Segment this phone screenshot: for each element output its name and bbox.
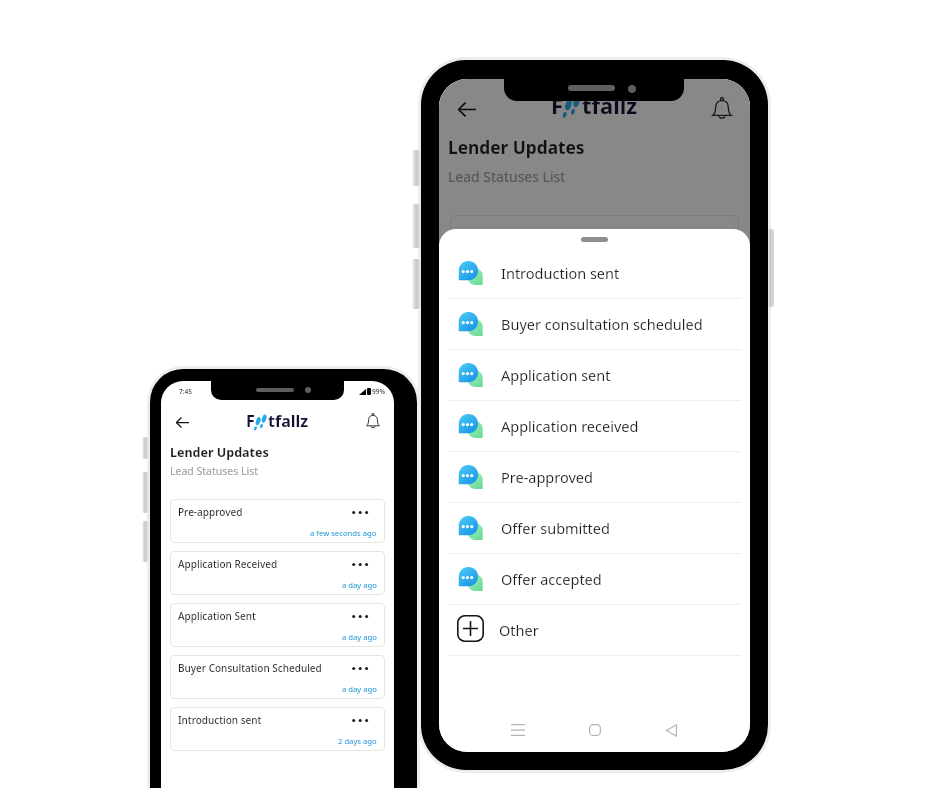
- staticText: Other: [499, 620, 539, 640]
- staticText: Introduction sent: [501, 263, 620, 283]
- button[interactable]: Back: [172, 412, 192, 432]
- staticText: a day ago: [342, 580, 377, 590]
- button[interactable]: Back: [454, 96, 480, 122]
- staticText: Lead Statuses List: [448, 167, 566, 186]
- button[interactable]: Introduction sent: [170, 707, 385, 751]
- button[interactable]: Application sent: [439, 350, 750, 400]
- button[interactable]: Introduction sent: [439, 248, 750, 298]
- staticText: F: [246, 410, 255, 432]
- button[interactable]: Application received: [439, 401, 750, 451]
- button[interactable]: Notifications: [709, 96, 735, 122]
- button[interactable]: Buyer consultation scheduled: [439, 299, 750, 349]
- staticText: Pre-approved: [178, 505, 243, 519]
- staticText: Pre-approved: [501, 467, 593, 487]
- staticText: Application Sent: [178, 609, 256, 623]
- staticText: tfallz: [582, 90, 638, 120]
- staticText: a day ago: [342, 632, 377, 642]
- staticText: Application Received: [178, 557, 278, 571]
- staticText: a day ago: [342, 684, 377, 694]
- staticText: Introduction sent: [178, 713, 262, 727]
- button[interactable]: [450, 215, 739, 273]
- staticText: tfallz: [268, 410, 309, 432]
- staticText: Application sent: [501, 365, 611, 385]
- button[interactable]: Application Sent: [170, 603, 385, 647]
- staticText: 99%: [372, 387, 385, 396]
- button[interactable]: Home: [578, 713, 612, 747]
- button[interactable]: Other: [439, 605, 750, 655]
- staticText: Offer submitted: [501, 518, 610, 538]
- button[interactable]: Application Received: [170, 551, 385, 595]
- staticText: 7:45: [179, 387, 192, 396]
- staticText: a few seconds ago: [310, 528, 377, 538]
- staticText: Offer accepted: [501, 569, 602, 589]
- button[interactable]: Offer accepted: [439, 554, 750, 604]
- staticText: Lender Updates: [448, 136, 585, 160]
- button[interactable]: Recents: [501, 713, 535, 747]
- button[interactable]: Buyer Consultation Scheduled: [170, 655, 385, 699]
- staticText: F: [551, 90, 564, 120]
- button[interactable]: Notifications: [363, 412, 383, 432]
- button[interactable]: Back: [654, 713, 688, 747]
- button[interactable]: Pre-approved: [439, 452, 750, 502]
- staticText: Lender Updates: [170, 444, 269, 461]
- staticText: Application received: [501, 416, 639, 436]
- button[interactable]: Pre-approved: [170, 499, 385, 543]
- button[interactable]: Offer submitted: [439, 503, 750, 553]
- staticText: Buyer Consultation Scheduled: [178, 661, 322, 675]
- staticText: Lead Statuses List: [170, 464, 258, 478]
- staticText: Buyer consultation scheduled: [501, 314, 703, 334]
- staticText: 2 days ago: [338, 736, 377, 746]
